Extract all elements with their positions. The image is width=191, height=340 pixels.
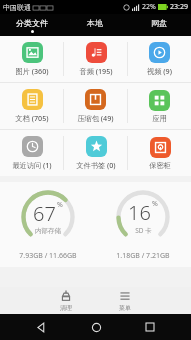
staticText: 应用 <box>152 114 167 123</box>
button[interactable]: 网盘 <box>127 14 191 36</box>
staticText: 内部存储 <box>35 227 61 235</box>
staticText: 视频 (9) <box>147 66 172 76</box>
button[interactable]: 压缩包 (49) <box>64 83 127 129</box>
button[interactable]: 音频 (195) <box>64 36 127 82</box>
staticText: 22% <box>142 2 156 12</box>
button[interactable]: Home <box>83 314 109 340</box>
staticText: 压缩包 (49) <box>77 113 114 123</box>
button[interactable]: 67 <box>0 188 95 261</box>
staticText: 中国联通 <box>3 3 31 12</box>
button[interactable]: Back <box>28 314 54 340</box>
button[interactable]: 文件书签 (0) <box>64 130 127 176</box>
staticText: 保密柜 <box>149 161 171 170</box>
staticText: 网盘 <box>151 18 167 28</box>
button[interactable]: Recent apps <box>137 314 163 340</box>
staticText: SD 卡 <box>135 226 152 235</box>
button[interactable]: 16 <box>95 188 191 261</box>
staticText: 16 <box>128 199 151 226</box>
button[interactable]: 保密柜 <box>128 130 191 176</box>
staticText: 本地 <box>87 18 103 28</box>
staticText: 音频 (195) <box>79 66 113 76</box>
staticText: 最近访问 (1) <box>12 160 52 170</box>
staticText: 图片 (360) <box>15 66 49 76</box>
staticText: 1.18GB / 7.21GB <box>116 251 170 261</box>
button[interactable]: 最近访问 (1) <box>0 130 63 176</box>
button[interactable]: 图片 (360) <box>0 36 63 82</box>
staticText: 菜单 <box>119 304 131 312</box>
button[interactable]: 菜单 <box>108 290 142 312</box>
staticText: 文档 (705) <box>15 113 49 123</box>
staticText: 文件书签 (0) <box>76 160 116 170</box>
button[interactable]: 视频 (9) <box>128 36 191 82</box>
staticText: 23:29 <box>170 2 188 12</box>
staticText: % <box>152 199 158 209</box>
button[interactable]: 清理 <box>49 290 83 312</box>
button[interactable]: 本地 <box>63 14 127 36</box>
button[interactable]: 文档 (705) <box>0 83 63 129</box>
button[interactable]: 应用 <box>128 83 191 129</box>
staticText: 分类文件 <box>16 18 48 28</box>
staticText: 清理 <box>60 304 72 312</box>
staticText: % <box>57 200 63 210</box>
staticText: 67 <box>33 200 56 227</box>
button[interactable]: 分类文件 <box>0 14 63 36</box>
staticText: 7.93GB / 11.66GB <box>19 251 77 261</box>
